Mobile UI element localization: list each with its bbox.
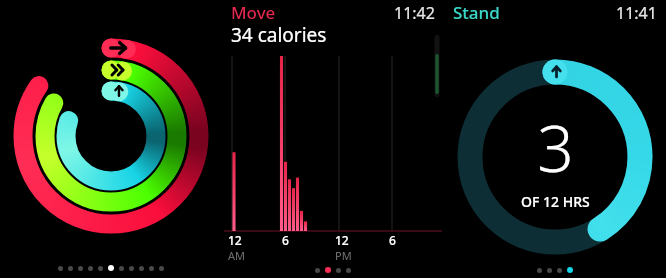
staticText: 6 (389, 232, 396, 248)
staticText: Move (231, 1, 276, 24)
staticText: 11:42 (394, 2, 435, 24)
staticText: 12 (228, 232, 242, 248)
staticText: 34 calories (231, 22, 327, 48)
staticText: OF 12 HRS (521, 192, 590, 211)
staticText: PM (335, 248, 352, 263)
button[interactable]: Activity rings (0, 0, 222, 278)
button[interactable]: Stand (444, 0, 666, 278)
staticText: 3 (537, 104, 574, 191)
staticText: 11:41 (616, 2, 657, 24)
button[interactable]: Move (222, 0, 444, 278)
staticText: 6 (282, 232, 289, 248)
staticText: Stand (453, 1, 500, 24)
staticText: 12 (335, 232, 349, 248)
staticText: AM (228, 248, 246, 263)
